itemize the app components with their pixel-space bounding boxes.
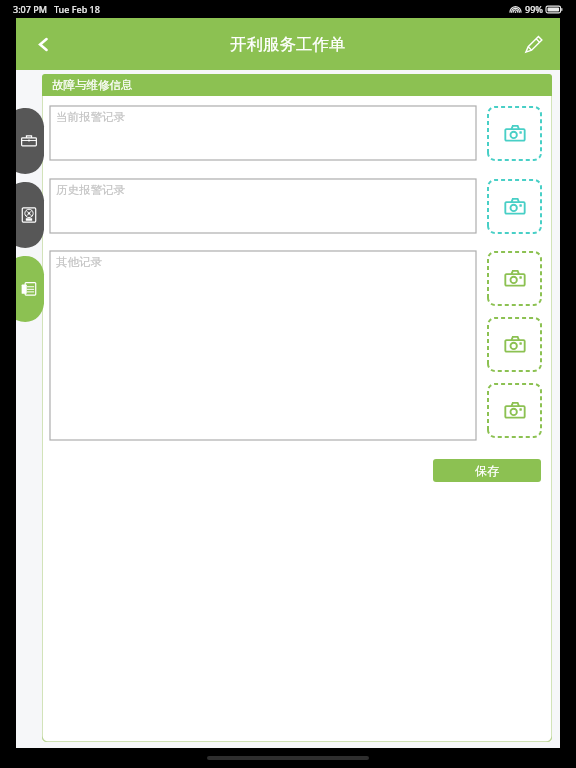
button[interactable]: Back (24, 25, 62, 63)
button[interactable]: Tab 3 (16, 252, 44, 326)
button[interactable]: Add photo of alarm history (487, 179, 542, 234)
staticText: Tue Feb 18 (54, 3, 100, 15)
button[interactable]: Edit (514, 25, 552, 63)
staticText: 99% (525, 3, 543, 15)
staticText: 开利服务工作单 (230, 34, 346, 55)
button[interactable]: 当前报警记录 (50, 106, 476, 160)
button[interactable]: Tab 2 (16, 178, 44, 252)
button[interactable]: Add photo 1 for other notes (487, 251, 542, 306)
button[interactable]: 历史报警记录 (50, 179, 476, 233)
staticText: 保存 (475, 463, 499, 478)
staticText: 当前报警记录 (56, 110, 125, 124)
button[interactable]: 其他记录 (50, 251, 476, 440)
staticText: 故障与维修信息 (52, 78, 133, 92)
button[interactable]: Add photo 3 for other notes (487, 383, 542, 438)
button[interactable]: Tab 1 (16, 104, 44, 178)
button[interactable]: 保存 (433, 459, 541, 482)
staticText: 历史报警记录 (56, 183, 125, 197)
staticText: 其他记录 (56, 255, 102, 269)
staticText: 3:07 PM (13, 3, 47, 15)
button[interactable]: Add photo of current alarm record (487, 106, 542, 161)
button[interactable]: Add photo 2 for other notes (487, 317, 542, 372)
